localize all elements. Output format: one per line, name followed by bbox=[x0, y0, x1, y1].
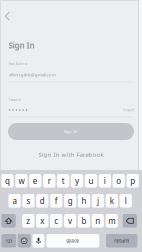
staticText: v bbox=[68, 215, 72, 226]
staticText: Sign In with Facebook bbox=[38, 150, 103, 158]
staticText: o bbox=[116, 175, 121, 186]
button[interactable]: j bbox=[92, 194, 104, 208]
staticText: l bbox=[125, 195, 127, 206]
button[interactable]: return bbox=[106, 234, 137, 248]
button[interactable]: h bbox=[78, 194, 90, 208]
button[interactable]: Back bbox=[5, 12, 19, 26]
staticText: w bbox=[18, 175, 24, 186]
staticText: z bbox=[26, 215, 30, 226]
button[interactable]: p bbox=[126, 174, 139, 188]
staticText: q bbox=[5, 175, 10, 186]
button[interactable]: Forgot? bbox=[104, 106, 134, 113]
button[interactable]: b bbox=[78, 214, 90, 228]
button[interactable]: 123 bbox=[1, 234, 16, 248]
button[interactable]: y bbox=[71, 174, 83, 188]
staticText: return bbox=[114, 238, 129, 244]
staticText: elliottgibb@gmail.com bbox=[9, 72, 56, 77]
staticText: g bbox=[68, 195, 73, 206]
staticText: space bbox=[66, 238, 79, 244]
staticText: b bbox=[81, 215, 86, 226]
staticText: n bbox=[95, 215, 100, 226]
button[interactable]: t bbox=[57, 174, 69, 188]
button[interactable]: m bbox=[106, 214, 118, 228]
button[interactable]: a bbox=[8, 194, 21, 208]
button[interactable]: c bbox=[50, 214, 62, 228]
button[interactable]: g bbox=[64, 194, 76, 208]
button[interactable]: r bbox=[43, 174, 55, 188]
staticText: 123 bbox=[6, 238, 12, 244]
staticText: Email Address bbox=[9, 62, 27, 66]
staticText: u bbox=[88, 175, 93, 186]
staticText: c bbox=[54, 215, 58, 226]
button[interactable]: space bbox=[46, 234, 99, 248]
button[interactable]: u bbox=[85, 174, 97, 188]
staticText: e bbox=[33, 175, 38, 186]
staticText: f bbox=[55, 195, 58, 206]
button[interactable]: i bbox=[99, 174, 111, 188]
staticText: j bbox=[97, 195, 99, 206]
button[interactable]: e bbox=[29, 174, 41, 188]
staticText: p bbox=[130, 175, 135, 186]
staticText: m bbox=[108, 215, 115, 226]
staticText: Sign In bbox=[64, 129, 78, 134]
staticText: h bbox=[82, 195, 87, 206]
staticText: x bbox=[40, 215, 44, 226]
staticText: Sign In bbox=[8, 40, 34, 51]
button[interactable]: s bbox=[22, 194, 35, 208]
button[interactable]: Sign In bbox=[8, 123, 134, 140]
staticText: r bbox=[48, 175, 51, 186]
button[interactable]: d bbox=[36, 194, 48, 208]
button[interactable]: q bbox=[1, 174, 14, 188]
staticText: k bbox=[110, 195, 114, 206]
staticText: d bbox=[40, 195, 45, 206]
button[interactable]: n bbox=[92, 214, 104, 228]
staticText: i bbox=[104, 175, 106, 186]
button[interactable]: k bbox=[106, 194, 118, 208]
button[interactable]: o bbox=[113, 174, 125, 188]
staticText: a bbox=[13, 195, 17, 206]
staticText: Forgot? bbox=[123, 108, 134, 112]
button[interactable]: v bbox=[64, 214, 76, 228]
button[interactable]: Delete bbox=[123, 214, 137, 228]
button[interactable]: Dictate bbox=[32, 234, 44, 248]
button[interactable]: f bbox=[50, 194, 62, 208]
staticText: y bbox=[75, 175, 79, 186]
button[interactable]: Emoji bbox=[18, 234, 31, 248]
button[interactable]: Shift bbox=[1, 214, 16, 228]
button[interactable]: z bbox=[22, 214, 34, 228]
staticText: t bbox=[62, 175, 65, 186]
button[interactable]: Sign In with Facebook bbox=[11, 150, 131, 159]
button[interactable]: l bbox=[120, 194, 132, 208]
button[interactable]: w bbox=[15, 174, 28, 188]
button[interactable]: x bbox=[36, 214, 48, 228]
staticText: s bbox=[26, 195, 30, 206]
staticText: Password bbox=[9, 98, 21, 102]
